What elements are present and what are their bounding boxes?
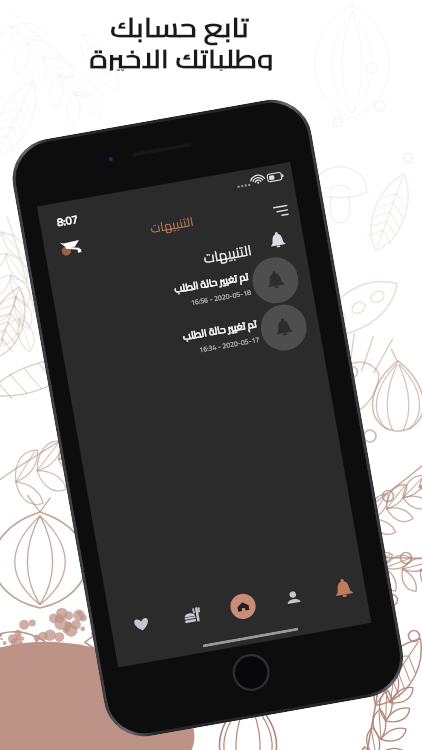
button[interactable]: تم تغيير حالة الطلب xyxy=(53,250,314,342)
button[interactable]: Orders xyxy=(164,595,220,634)
button[interactable]: تم تغيير حالة الطلب xyxy=(61,298,322,390)
button[interactable]: Profile xyxy=(265,578,321,616)
staticText: تابع حسابك xyxy=(110,3,249,52)
staticText: وطلباتك الاخيرة xyxy=(89,35,274,71)
staticText: 16:34 - 2020-05-17 xyxy=(198,333,260,356)
staticText: التنبيهات xyxy=(149,210,196,240)
button[interactable]: Notifications xyxy=(316,569,371,607)
staticText: تم تغيير حالة الطلب xyxy=(173,267,250,299)
button[interactable]: Home xyxy=(215,587,271,625)
button[interactable]: Favourites xyxy=(113,604,169,643)
staticText: 8:07 xyxy=(55,209,80,233)
button[interactable]: Filter xyxy=(270,200,292,222)
staticText: تم تغيير حالة الطلب xyxy=(181,314,258,346)
button[interactable]: Notifications xyxy=(267,230,288,251)
staticText: 16:56 - 2020-05-18 xyxy=(190,286,252,309)
staticText: التنبيهات xyxy=(201,237,254,271)
button[interactable]: Cart xyxy=(56,233,82,258)
